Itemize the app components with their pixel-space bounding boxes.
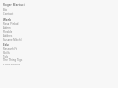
staticText: Contact [3, 12, 14, 16]
staticText: Addres [3, 34, 13, 38]
staticText: The Thing Tigs [3, 58, 23, 62]
staticText: Researh Ft [3, 47, 18, 51]
staticText: Flexble [3, 30, 13, 34]
staticText: Roger Martuci [3, 3, 25, 7]
staticText: Skills [3, 51, 10, 55]
staticText: Tols [3, 55, 9, 59]
staticText: a data dashbrd [3, 63, 21, 66]
staticText: Rosa Pinlad [3, 22, 19, 26]
staticText: Susane Mitchl [3, 38, 22, 42]
staticText: Admn [3, 26, 11, 30]
staticText: Edu [3, 43, 9, 47]
staticText: Bio [3, 8, 8, 12]
staticText: Work [3, 18, 12, 22]
